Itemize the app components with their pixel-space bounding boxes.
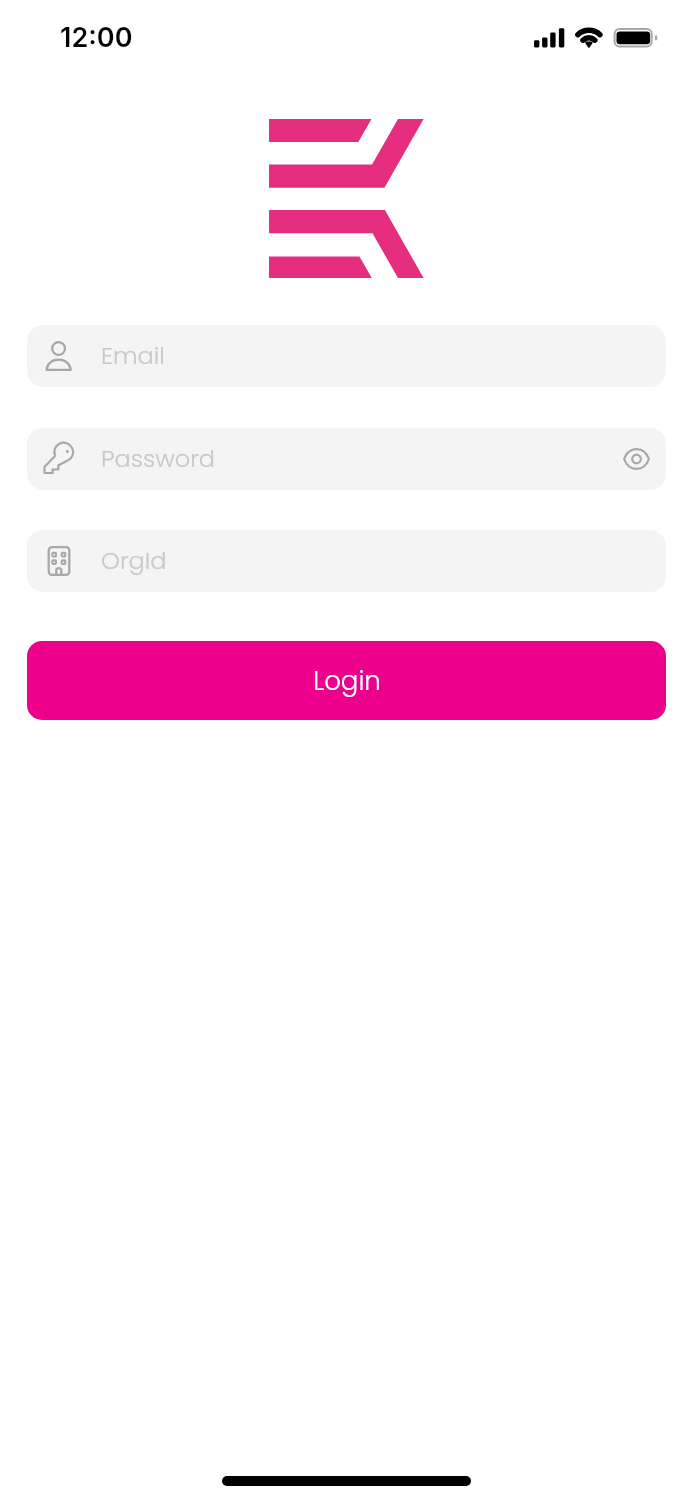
staticText: Password [101,442,614,476]
button[interactable]: Login [27,641,666,720]
button[interactable]: Password [27,428,666,490]
staticText: 12:00 [60,21,133,54]
button[interactable]: OrgId [27,530,666,592]
staticText: OrgId [101,544,658,578]
staticText: Email [101,339,658,373]
staticText: Login [313,663,381,699]
button[interactable]: Email [27,325,666,387]
other: App logo [269,119,424,278]
button[interactable]: Show password [614,437,658,481]
